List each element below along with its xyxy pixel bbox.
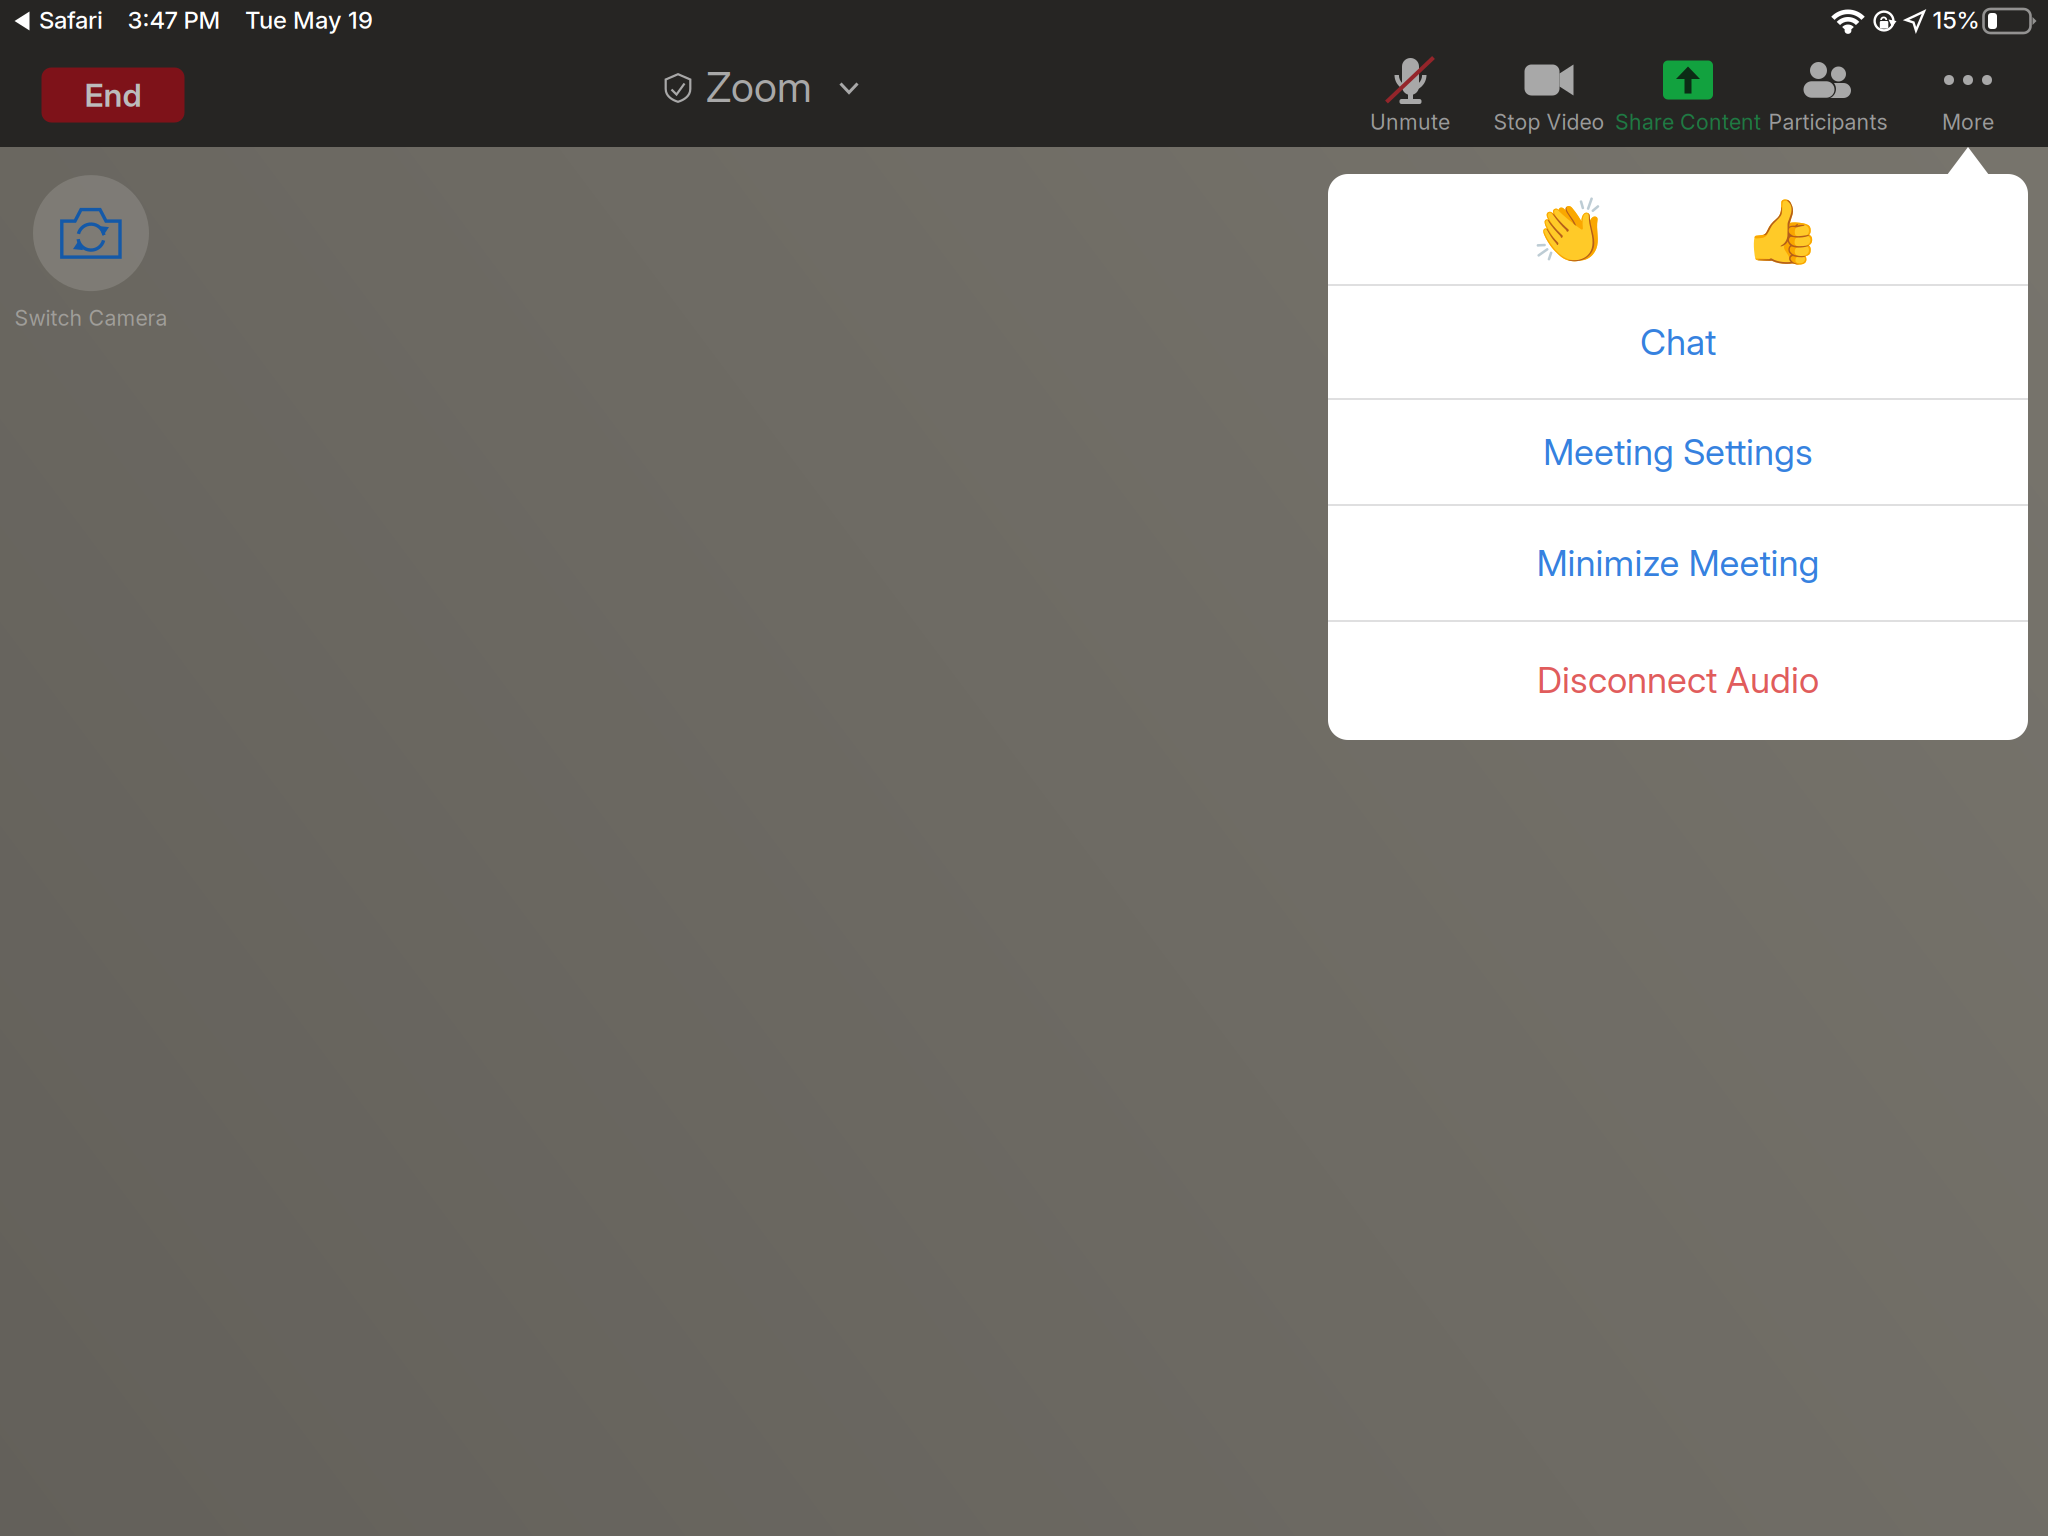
staticText: 👏: [1531, 195, 1609, 269]
staticText: Share Content: [1615, 109, 1761, 135]
staticText: 15%: [1932, 5, 1979, 34]
button[interactable]: Share Content: [1608, 54, 1768, 138]
button[interactable]: Switch Camera: [0, 165, 211, 341]
button[interactable]: Thumbs up: [1676, 176, 1888, 287]
staticText: End: [84, 76, 141, 114]
staticText: Chat: [1640, 320, 1716, 364]
button[interactable]: Stop Video: [1469, 54, 1629, 138]
staticText: Participants: [1768, 109, 1887, 135]
staticText: Tue May 19: [245, 5, 373, 34]
button[interactable]: Clap: [1464, 176, 1676, 287]
staticText: Stop Video: [1493, 109, 1604, 135]
button[interactable]: End: [41, 67, 184, 122]
button[interactable]: More: [1888, 54, 2048, 138]
staticText: Disconnect Audio: [1537, 658, 1819, 702]
button[interactable]: Disconnect Audio: [1328, 620, 2028, 739]
staticText: 3:47 PM: [127, 5, 220, 34]
button[interactable]: Meeting Settings: [1328, 399, 2028, 505]
button[interactable]: Participants: [1748, 54, 1908, 138]
staticText: Zoom: [706, 62, 812, 112]
staticText: Switch Camera: [14, 305, 167, 331]
button[interactable]: Chat: [1328, 285, 2028, 399]
staticText: Unmute: [1370, 109, 1450, 135]
staticText: Meeting Settings: [1543, 430, 1813, 474]
staticText: Safari: [39, 5, 103, 34]
button[interactable]: Unmute: [1330, 54, 1490, 138]
staticText: More: [1942, 109, 1994, 135]
staticText: Minimize Meeting: [1536, 541, 1819, 585]
staticText: 👍: [1743, 195, 1821, 269]
button[interactable]: Minimize Meeting: [1328, 505, 2028, 621]
